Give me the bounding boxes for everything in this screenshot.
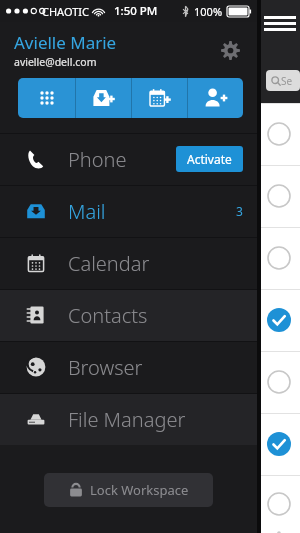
button[interactable] xyxy=(256,103,300,165)
staticText: Browser xyxy=(68,354,143,381)
staticText: Lock Workspace xyxy=(90,481,189,499)
button[interactable] xyxy=(256,165,300,227)
button[interactable]: Settings xyxy=(215,35,245,65)
button[interactable]: Calendar xyxy=(0,237,257,289)
button[interactable]: Menu xyxy=(264,16,296,31)
staticText: Phone xyxy=(68,146,127,173)
button[interactable]: Mail xyxy=(0,185,257,237)
staticText: Contacts xyxy=(68,302,148,329)
button[interactable]: File Manager xyxy=(0,393,257,445)
button[interactable] xyxy=(256,351,300,413)
button[interactable] xyxy=(256,289,300,351)
staticText: Se xyxy=(281,74,293,88)
button[interactable]: Lock Workspace xyxy=(44,473,213,507)
button[interactable]: New event xyxy=(131,78,187,118)
button[interactable]: Phone xyxy=(0,133,257,185)
button[interactable] xyxy=(256,413,300,475)
button[interactable]: Browser xyxy=(0,341,257,393)
staticText: File Manager xyxy=(68,406,186,433)
button[interactable] xyxy=(256,475,300,533)
button[interactable]: Se xyxy=(266,70,300,91)
button[interactable]: New contact xyxy=(187,78,243,118)
staticText: Calendar xyxy=(68,250,150,277)
button[interactable] xyxy=(256,227,300,289)
button[interactable]: Contacts xyxy=(0,289,257,341)
staticText: CHAOTIC xyxy=(42,4,89,19)
button[interactable]: Activate xyxy=(176,146,243,172)
staticText: 3 xyxy=(236,203,243,219)
staticText: 1:50 PM xyxy=(114,3,158,19)
button[interactable]: Apps xyxy=(18,78,75,118)
staticText: Mail xyxy=(68,198,106,225)
staticText: Activate xyxy=(187,151,232,167)
staticText: avielle@dell.com xyxy=(14,55,97,69)
button[interactable]: New mail xyxy=(75,78,131,118)
staticText: 100% xyxy=(194,4,223,19)
staticText: Avielle Marie xyxy=(14,31,117,54)
